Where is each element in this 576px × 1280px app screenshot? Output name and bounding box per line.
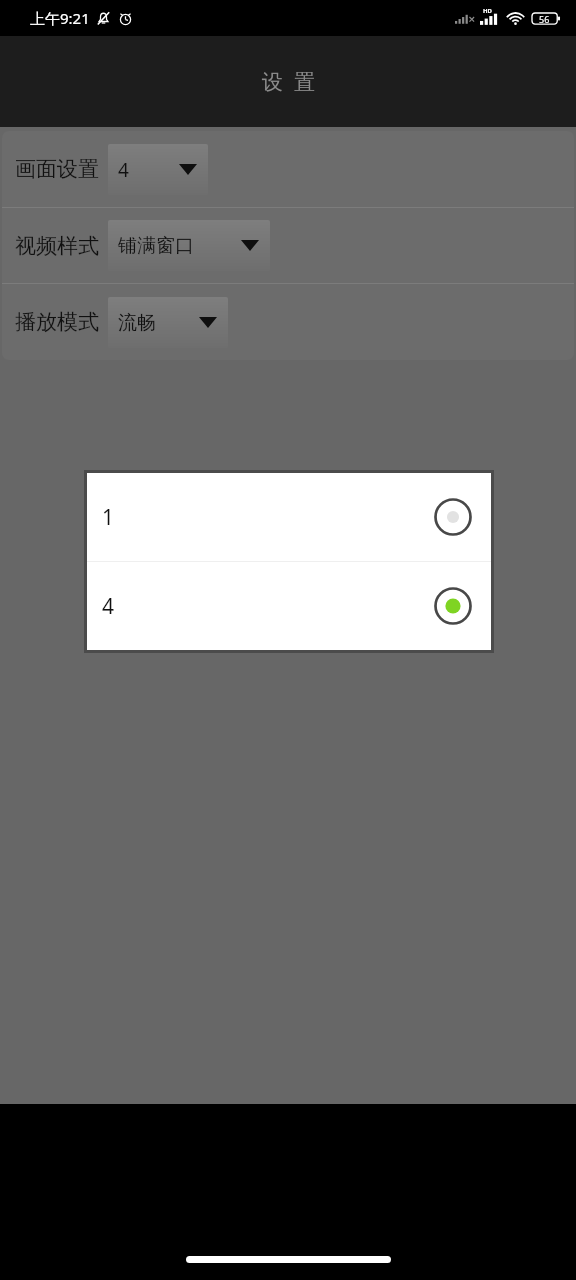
staticText: 流畅 — [118, 311, 156, 335]
staticText: 4 — [102, 592, 115, 621]
staticText: 设 置 — [262, 67, 315, 96]
button[interactable]: 播放模式 — [2, 284, 574, 360]
button[interactable]: 画面设置 — [2, 131, 574, 207]
staticText: HD — [483, 7, 492, 15]
button[interactable]: Not selected — [433, 497, 473, 537]
staticText: 画面设置 — [15, 156, 99, 182]
staticText: 铺满窗口 — [118, 234, 194, 258]
button[interactable]: 流畅 — [108, 297, 228, 348]
staticText: 上午9:21 — [30, 8, 90, 28]
button[interactable]: 视频样式 — [2, 208, 574, 283]
staticText: 播放模式 — [15, 309, 99, 335]
staticText: 4 — [118, 157, 129, 183]
button[interactable]: 1 — [87, 473, 491, 561]
button[interactable]: Selected — [433, 586, 473, 626]
staticText: 1 — [102, 503, 115, 532]
button[interactable]: 4 — [87, 562, 491, 650]
button[interactable]: 4 — [108, 144, 208, 195]
button[interactable]: 铺满窗口 — [108, 220, 270, 271]
staticText: 视频样式 — [15, 233, 99, 259]
staticText: 56 — [539, 13, 550, 25]
